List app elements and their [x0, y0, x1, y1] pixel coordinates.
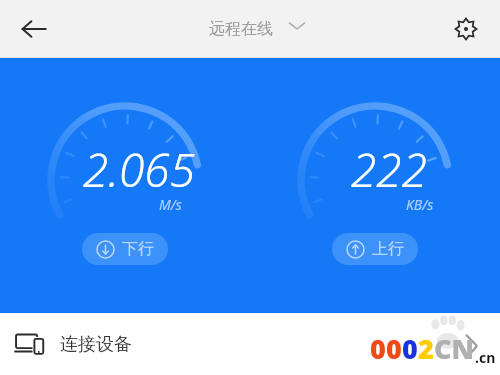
staticText: 0	[370, 330, 386, 367]
staticText: 222	[351, 138, 427, 201]
staticText: M/s	[159, 195, 182, 214]
button[interactable]: 下行	[82, 233, 168, 265]
staticText: .cn	[475, 348, 496, 367]
button[interactable]: 远程在线	[209, 19, 307, 39]
staticText: 0	[386, 330, 402, 367]
button[interactable]: Settings	[442, 5, 490, 53]
staticText: 连接设备	[60, 333, 132, 356]
staticText: CN	[434, 330, 475, 367]
staticText: KB/s	[406, 195, 434, 214]
staticText: 远程在线	[209, 19, 273, 39]
staticText: 下行	[122, 239, 154, 259]
button[interactable]: 上行	[332, 233, 418, 265]
staticText: 2.065	[83, 138, 195, 201]
staticText: 2	[418, 330, 434, 367]
staticText: 0	[402, 330, 418, 367]
button[interactable]: 连接设备	[14, 327, 132, 361]
button[interactable]: Back	[8, 3, 60, 55]
staticText: 上行	[372, 239, 404, 259]
